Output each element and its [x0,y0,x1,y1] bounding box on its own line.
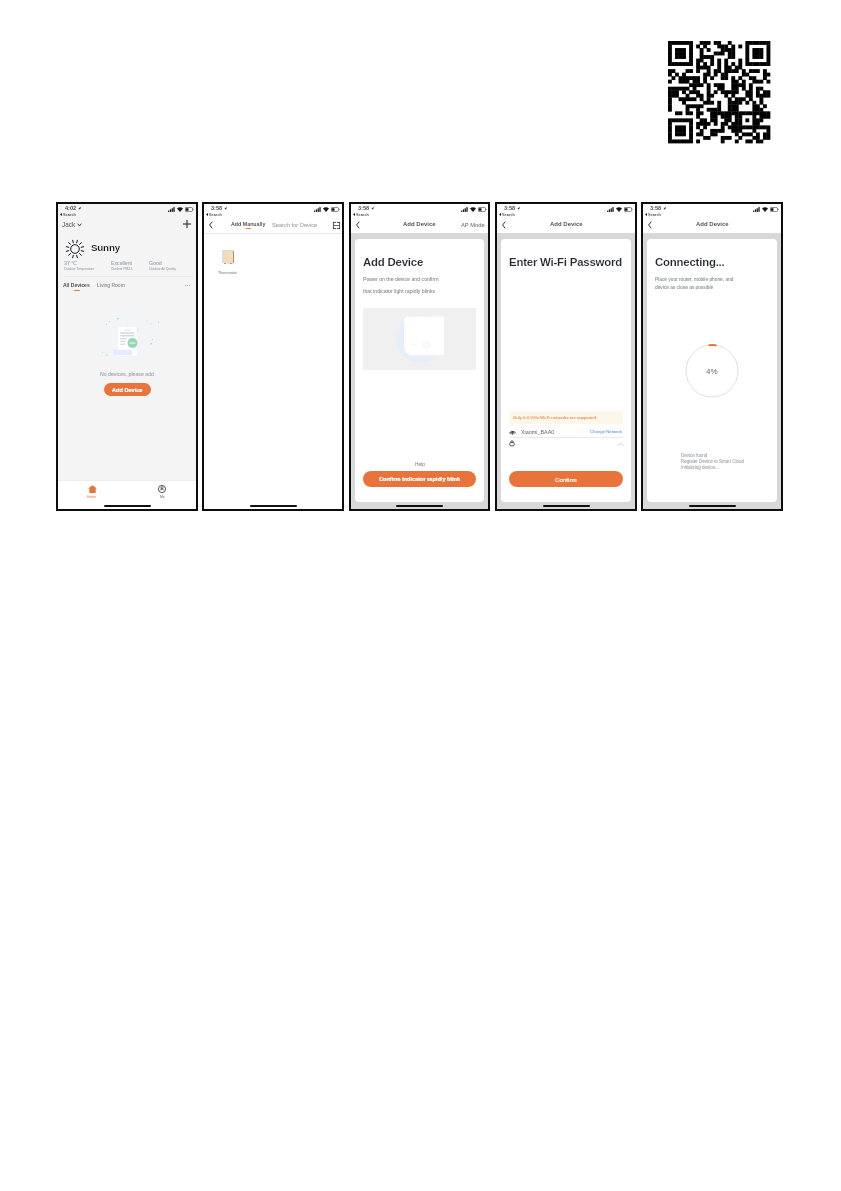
staticText: Jack [62,221,76,228]
staticText: Excellent [111,260,133,266]
staticText: Add Device [112,387,143,393]
button[interactable]: AP Mode [461,222,485,228]
staticText: 3:58 [211,205,223,211]
staticText: 37 °C [64,260,78,266]
staticText: Confirm indicator rapidly blink [379,476,461,482]
staticText: No devices, please add [100,371,154,377]
button[interactable]: Back [498,219,509,230]
staticText: Outdoor PM2.5 [111,267,133,271]
staticText: Outdoor Temperature [64,267,95,271]
staticText: AP Mode [461,222,485,228]
staticText: that indicator light rapidly blinks [363,288,436,294]
staticText: 4% [706,367,718,376]
staticText: Good [149,260,162,266]
button[interactable]: Jack [62,221,81,228]
staticText: 3:58 [358,205,370,211]
button[interactable]: Back [644,219,655,230]
staticText: Search [209,212,222,216]
staticText: 3:58 [650,205,662,211]
button[interactable]: Home [79,481,105,502]
staticText: Only 2.4 GHz Wi-Fi networks are supporte… [513,415,597,420]
button[interactable]: All Devices [63,282,90,291]
button[interactable]: Show password [617,441,623,447]
button[interactable]: Add Device [104,383,151,396]
staticText: Change Network [590,429,623,434]
staticText: Device found Register Device to Smart Cl… [681,453,745,470]
button[interactable]: Confirm indicator rapidly blink [363,471,476,487]
button[interactable]: Search for Device [272,222,318,228]
staticText: Connecting... [655,256,725,269]
staticText: Add Device [363,256,424,269]
button[interactable]: Back [205,219,216,230]
button[interactable]: Living Room [97,282,125,288]
staticText: Enter Wi-Fi Password [509,256,622,269]
button[interactable]: Help [363,462,476,467]
button[interactable]: Confirm [509,471,623,487]
staticText: 3:58 [504,205,516,211]
staticText: Sunny [91,242,120,253]
staticText: Search for Device [272,222,318,228]
button[interactable]: More options [183,281,192,289]
staticText: Search [648,212,661,216]
button[interactable]: Change Network [590,429,623,434]
button[interactable]: Back [352,219,363,230]
staticText: Me [160,495,165,499]
staticText: Add Device [403,221,436,228]
staticText: Thermostat [218,271,237,275]
staticText: Search [356,212,369,216]
staticText: Power on the device and confirm [363,276,439,282]
staticText: Confirm [555,476,577,483]
staticText: Search [502,212,515,216]
staticText: Help [415,462,425,467]
staticText: Home [87,495,97,499]
staticText: Place your router, mobile phone, and dev… [655,277,734,290]
button[interactable]: Add device [181,218,193,230]
button[interactable] [222,250,234,265]
staticText: Add Device [550,221,583,228]
staticText: 4:02 [65,205,77,211]
button[interactable]: Me [149,481,175,502]
button[interactable]: Scan QR code [331,220,341,230]
staticText: Xiaomi_BAA0 [521,429,555,435]
staticText: Outdoor Air Quality [149,267,176,271]
staticText: Add Manually [231,221,266,227]
staticText: Living Room [97,282,125,288]
staticText: Add Device [696,221,729,228]
staticText: All Devices [63,282,90,288]
staticText: Search [63,212,76,216]
button[interactable]: Add Manually [231,221,266,229]
